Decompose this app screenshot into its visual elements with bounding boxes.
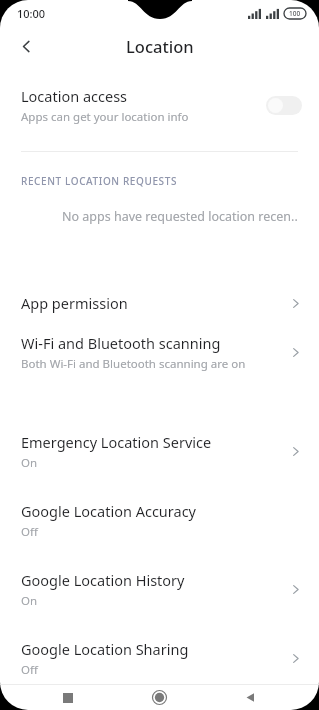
staticText: App permission: [21, 293, 128, 313]
button[interactable]: Location access: [0, 78, 319, 133]
staticText: Google Location Accuracy: [21, 501, 196, 521]
button[interactable]: App permission: [0, 287, 319, 319]
button[interactable]: Google Location Sharing: [0, 633, 319, 684]
staticText: On: [21, 593, 38, 609]
staticText: 100: [289, 9, 301, 18]
button[interactable]: Home: [137, 685, 181, 710]
button[interactable]: Google Location Accuracy: [0, 495, 319, 546]
staticText: Off: [21, 524, 38, 540]
staticText: Location access: [21, 86, 128, 106]
staticText: Apps can get your location info: [21, 109, 189, 125]
button[interactable]: Location access toggle: [266, 96, 302, 115]
button[interactable]: Recents: [46, 685, 90, 710]
staticText: Emergency Location Service: [21, 432, 212, 452]
button[interactable]: Wi-Fi and Bluetooth scanning: [0, 327, 319, 378]
button[interactable]: Emergency Location Service: [0, 426, 319, 477]
staticText: RECENT LOCATION REQUESTS: [21, 174, 178, 188]
button[interactable]: Back: [228, 685, 272, 710]
button[interactable]: Google Location History: [0, 564, 319, 615]
staticText: No apps have requested location recen..: [62, 208, 298, 225]
staticText: Google Location History: [21, 570, 185, 590]
staticText: Location: [126, 35, 194, 57]
staticText: Wi-Fi and Bluetooth scanning: [21, 333, 221, 353]
staticText: Off: [21, 662, 38, 678]
staticText: Both Wi-Fi and Bluetooth scanning are on: [21, 356, 246, 372]
staticText: 10:00: [17, 6, 46, 21]
staticText: On: [21, 455, 38, 471]
staticText: Google Location Sharing: [21, 639, 189, 659]
button[interactable]: Back: [8, 28, 44, 64]
